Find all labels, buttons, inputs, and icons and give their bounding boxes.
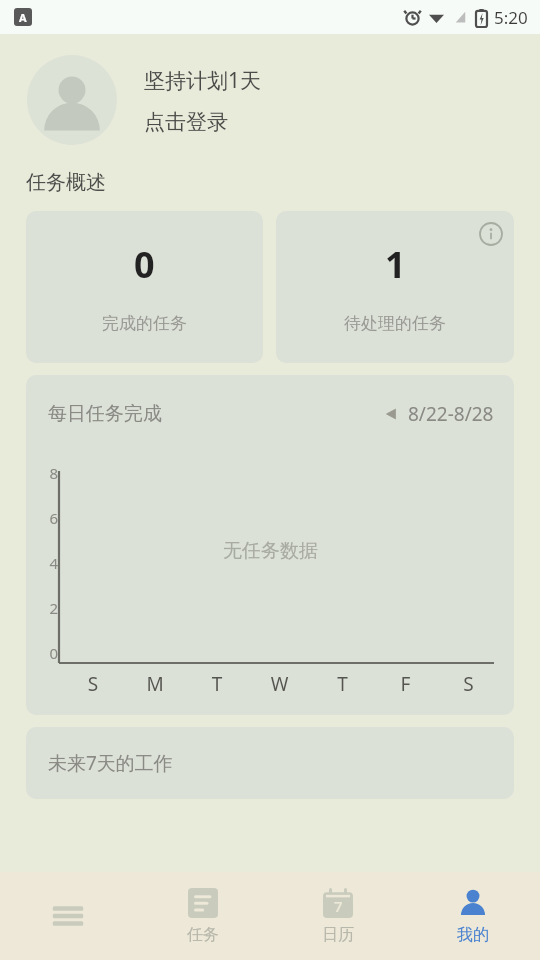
staticText: M — [124, 671, 186, 697]
staticText: 8/22-8/28 — [408, 401, 494, 427]
button[interactable]: 未来7天的工作 — [26, 727, 514, 799]
staticText: W — [248, 671, 311, 697]
button[interactable]: Info — [476, 219, 506, 249]
other: Previous week — [384, 407, 398, 421]
staticText: 每日任务完成 — [48, 402, 162, 426]
button[interactable]: 任务 — [135, 872, 270, 960]
staticText: T — [186, 671, 248, 697]
button[interactable]: 我的 — [405, 872, 540, 960]
staticText: 2 — [38, 598, 58, 618]
staticText: 任务概述 — [26, 170, 106, 195]
button[interactable]: 坚持计划1天 — [0, 34, 540, 166]
staticText: 4 — [38, 553, 58, 573]
staticText: 我的 — [457, 925, 489, 945]
staticText: 完成的任务 — [102, 313, 187, 334]
staticText: 无任务数据 — [223, 539, 318, 563]
staticText: F — [374, 671, 437, 697]
staticText: 0 — [38, 643, 58, 663]
staticText: 0 — [134, 240, 155, 289]
staticText: 待处理的任务 — [344, 313, 446, 334]
button[interactable]: 每日任务完成 — [26, 375, 514, 715]
staticText: 8 — [38, 463, 58, 483]
button[interactable]: 0 — [26, 211, 263, 363]
staticText: 1 — [385, 240, 406, 289]
staticText: 任务 — [187, 925, 219, 945]
staticText: 坚持计划1天 — [144, 66, 262, 95]
button[interactable]: Menu — [0, 872, 135, 960]
staticText: 6 — [38, 508, 58, 528]
button[interactable]: 1 — [276, 211, 514, 363]
staticText: 7 — [334, 896, 343, 916]
staticText: 5:20 — [494, 6, 528, 29]
staticText: 未来7天的工作 — [48, 750, 173, 776]
staticText: 日历 — [322, 925, 354, 945]
staticText: 点击登录 — [144, 109, 228, 135]
button[interactable]: 7 — [270, 872, 405, 960]
staticText: T — [311, 671, 374, 697]
staticText: A — [19, 10, 27, 25]
staticText: S — [437, 671, 500, 697]
staticText: S — [62, 671, 124, 697]
